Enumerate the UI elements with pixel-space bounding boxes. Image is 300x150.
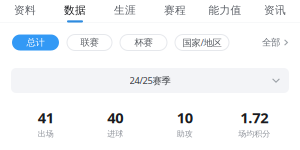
staticText: 总计 <box>26 37 44 48</box>
staticText: 生涯 <box>114 4 136 17</box>
button[interactable]: 联赛 <box>67 34 112 50</box>
button[interactable]: 能力值 <box>200 0 250 26</box>
staticText: 国家/地区 <box>182 36 221 49</box>
button[interactable]: 国家/地区 <box>175 34 229 50</box>
staticText: 资料 <box>14 4 36 17</box>
staticText: 出场 <box>38 129 54 139</box>
button[interactable]: 生涯 <box>100 0 150 26</box>
staticText: 1.72 <box>240 108 268 127</box>
staticText: 进球 <box>107 129 123 139</box>
staticText: 场均积分 <box>238 129 270 139</box>
staticText: 数据 <box>64 4 86 17</box>
button[interactable]: 赛程 <box>150 0 200 26</box>
staticText: 能力值 <box>208 4 241 17</box>
staticText: 杯赛 <box>134 37 152 48</box>
staticText: 资讯 <box>264 4 286 17</box>
staticText: 24/25赛季 <box>129 74 170 87</box>
staticText: 助攻 <box>177 129 193 139</box>
staticText: 联赛 <box>80 37 98 48</box>
staticText: 41 <box>38 108 54 127</box>
button[interactable]: 数据 <box>50 0 100 26</box>
button[interactable]: 总计 <box>12 34 59 50</box>
button[interactable]: 杯赛 <box>120 34 167 50</box>
button[interactable]: 24/25赛季 <box>11 68 289 93</box>
staticText: 全部 <box>262 37 280 48</box>
staticText: 赛程 <box>164 4 186 17</box>
button[interactable]: 资料 <box>0 0 50 26</box>
staticText: 40 <box>107 108 123 127</box>
button[interactable]: 全部 <box>262 34 288 50</box>
button[interactable]: 资讯 <box>250 0 300 26</box>
staticText: 10 <box>177 108 193 127</box>
